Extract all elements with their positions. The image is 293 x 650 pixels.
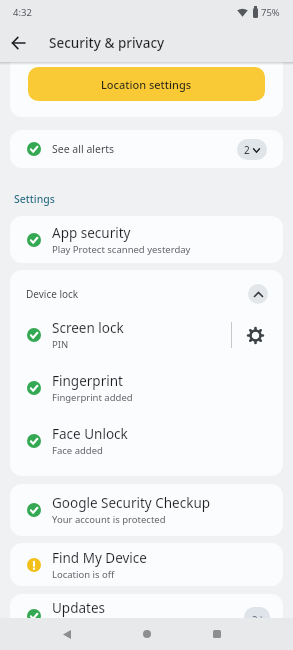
staticText: Play Protect scanned yesterday [52, 243, 191, 256]
staticText: Settings [14, 192, 55, 206]
staticText: Face Unlock [52, 425, 128, 443]
staticText: 2 ˅ [252, 613, 263, 626]
staticText: Fingerprint [52, 372, 123, 390]
button[interactable]: See all alerts [10, 130, 283, 168]
button[interactable] [242, 322, 268, 348]
staticText: See all alerts [52, 142, 115, 156]
staticText: Face added [52, 444, 103, 457]
staticText: Updates [52, 599, 106, 617]
staticText: PIN [52, 338, 69, 351]
staticText: Device lock [26, 287, 79, 301]
staticText: Find My Device [52, 549, 147, 567]
staticText: Fingerprint added [52, 391, 133, 404]
button[interactable]: Google Security Checkup [10, 484, 283, 536]
button[interactable]: Screen lock [10, 317, 283, 370]
button[interactable]: Location settings [28, 67, 265, 101]
button[interactable]: App security [10, 216, 283, 263]
staticText: App security [52, 224, 131, 242]
button[interactable]: Face Unlock [10, 423, 283, 476]
staticText: Location is off [52, 568, 115, 581]
button[interactable]: Find My Device [10, 543, 283, 586]
button[interactable]: Device lock [10, 270, 283, 317]
button[interactable]: Fingerprint [10, 370, 283, 423]
button[interactable]: Updates [10, 594, 283, 650]
staticText: Google Security Checkup [52, 494, 211, 512]
button[interactable] [0, 24, 38, 62]
staticText: 4:32 [13, 6, 32, 19]
button[interactable] [193, 618, 241, 650]
button[interactable] [123, 618, 171, 650]
staticText: 75% [261, 6, 280, 19]
staticText: Security & privacy [49, 34, 165, 52]
staticText: Location settings [101, 77, 192, 92]
staticText: Your account is protected [52, 513, 166, 526]
button[interactable]: 2 [237, 139, 267, 160]
staticText: 2 [244, 143, 250, 157]
staticText: Screen lock [52, 319, 124, 337]
button[interactable] [43, 618, 91, 650]
